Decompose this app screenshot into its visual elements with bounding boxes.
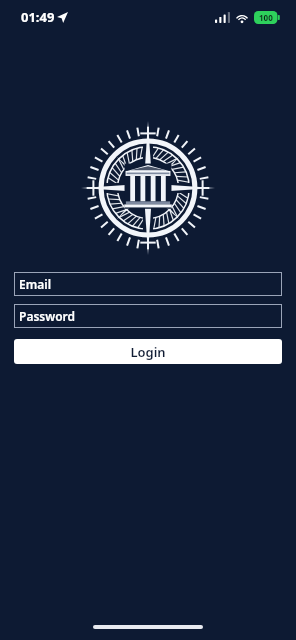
staticText: Email (19, 276, 52, 292)
button[interactable]: Password (14, 304, 282, 328)
staticText: Login (130, 343, 166, 361)
staticText: Password (19, 308, 76, 324)
staticText: 100 (259, 12, 273, 23)
button[interactable]: Email (14, 272, 282, 296)
staticText: 01:49 (21, 8, 55, 26)
button[interactable]: Login (14, 339, 282, 364)
